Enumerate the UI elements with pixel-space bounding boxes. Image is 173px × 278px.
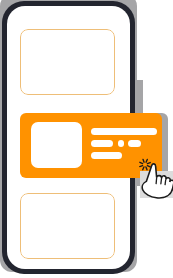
button[interactable] xyxy=(20,193,115,259)
other: Tap xyxy=(138,158,173,202)
button[interactable] xyxy=(20,29,115,95)
button[interactable] xyxy=(20,113,162,178)
